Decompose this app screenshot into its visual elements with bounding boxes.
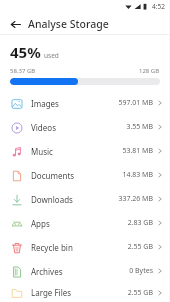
staticText: 128 GB	[139, 67, 160, 75]
button[interactable]: Recycle bin	[0, 235, 170, 259]
staticText: Apps	[31, 218, 50, 229]
staticText: Archives	[31, 266, 63, 277]
staticText: used	[44, 51, 59, 60]
button[interactable]: Large Files	[0, 283, 170, 302]
staticText: Music	[31, 146, 53, 157]
button[interactable]: Back	[7, 16, 23, 32]
staticText: Downloads	[31, 194, 73, 205]
staticText: 2.55 GB	[127, 288, 153, 298]
staticText: 58.37 GB	[10, 67, 36, 75]
staticText: Large Files	[31, 287, 72, 298]
staticText: Images	[31, 98, 59, 109]
button[interactable]: Music	[0, 139, 170, 163]
button[interactable]: Images	[0, 91, 170, 115]
staticText: Recycle bin	[31, 242, 73, 253]
button[interactable]: Archives	[0, 259, 170, 283]
button[interactable]: Downloads	[0, 187, 170, 211]
staticText: 0 Bytes	[129, 266, 153, 276]
staticText: Analyse Storage	[28, 17, 109, 31]
staticText: 3.55 MB	[126, 122, 153, 132]
button[interactable]: Documents	[0, 163, 170, 187]
button[interactable]: Videos	[0, 115, 170, 139]
staticText: Documents	[31, 170, 75, 181]
button[interactable]: Apps	[0, 211, 170, 235]
staticText: 597.01 MB	[118, 98, 153, 108]
staticText: 4:52	[152, 2, 165, 11]
staticText: 337.26 MB	[118, 194, 153, 204]
staticText: 2.83 GB	[127, 218, 153, 228]
staticText: 14.83 MB	[122, 170, 153, 180]
staticText: 53.81 MB	[122, 146, 153, 156]
staticText: 2.55 GB	[127, 242, 153, 252]
staticText: Videos	[31, 122, 56, 133]
staticText: 45%	[10, 42, 41, 62]
